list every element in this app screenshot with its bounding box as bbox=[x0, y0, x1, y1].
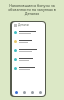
button[interactable]: Tab bbox=[29, 89, 36, 96]
button[interactable]: Tab bbox=[37, 89, 44, 96]
button[interactable]: Tab bbox=[21, 89, 28, 96]
button[interactable] bbox=[12, 28, 45, 37]
button[interactable] bbox=[12, 55, 45, 64]
button[interactable] bbox=[12, 64, 45, 73]
staticText: Детали bbox=[18, 23, 29, 27]
button[interactable] bbox=[12, 46, 45, 55]
button[interactable]: Menu bbox=[12, 22, 45, 28]
staticText: Накопившиеся бонусы за обязанности на за… bbox=[4, 3, 60, 16]
button[interactable]: Tab bbox=[13, 89, 20, 96]
button[interactable] bbox=[12, 37, 45, 46]
